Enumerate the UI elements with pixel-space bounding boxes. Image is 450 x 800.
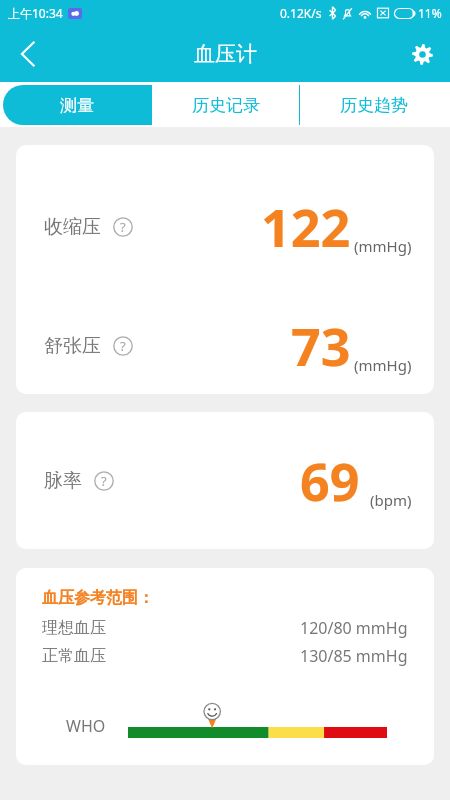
button[interactable]: Settings	[394, 26, 450, 82]
staticText: 69	[300, 445, 360, 516]
staticText: 血压参考范围：	[42, 588, 154, 608]
staticText: 理想血压	[42, 618, 106, 638]
staticText: 120/80 mmHg	[300, 617, 408, 639]
staticText: WHO	[66, 715, 106, 737]
staticText: 11%	[418, 5, 442, 21]
staticText: 血压计	[194, 41, 257, 67]
staticText: ?	[120, 337, 126, 355]
staticText: (bpm)	[370, 490, 412, 510]
staticText: ?	[101, 472, 107, 490]
staticText: 122	[261, 191, 351, 262]
staticText: 73	[291, 310, 351, 381]
staticText: 历史趋势	[340, 95, 408, 116]
staticText: 0.12K/s	[280, 5, 322, 21]
staticText: (mmHg)	[354, 236, 412, 256]
staticText: ?	[120, 218, 126, 236]
staticText: 130/85 mmHg	[300, 645, 408, 667]
staticText: 舒张压	[44, 334, 101, 358]
staticText: 上午10:34	[8, 5, 63, 21]
button[interactable]: 历史趋势	[300, 85, 447, 125]
button[interactable]: 测量	[3, 85, 151, 125]
staticText: (mmHg)	[354, 355, 412, 375]
button[interactable]: 历史记录	[152, 85, 299, 125]
staticText: 历史记录	[192, 95, 260, 116]
staticText: 正常血压	[42, 646, 106, 666]
staticText: 收缩压	[44, 215, 101, 239]
staticText: 脉率	[44, 469, 82, 493]
button[interactable]: Back	[0, 26, 56, 82]
staticText: 测量	[60, 95, 94, 116]
